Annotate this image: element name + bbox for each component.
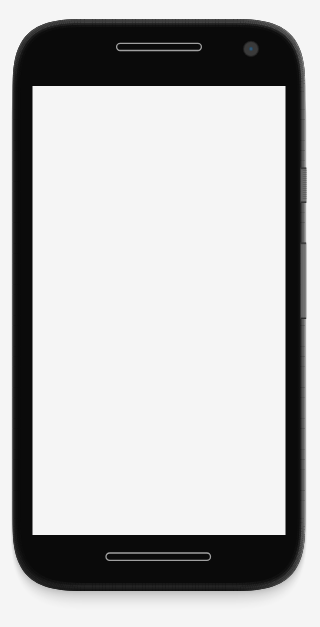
- button[interactable]: Phone device mockup with blank screen: [0, 0, 320, 627]
